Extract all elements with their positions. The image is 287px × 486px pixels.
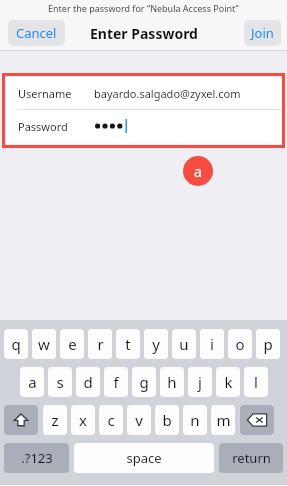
- staticText: return: [232, 449, 271, 467]
- staticText: z: [51, 410, 59, 430]
- button[interactable]: v: [127, 405, 151, 435]
- button[interactable]: u: [172, 329, 196, 359]
- staticText: p: [263, 334, 273, 354]
- button[interactable]: y: [144, 329, 168, 359]
- button[interactable]: o: [228, 329, 252, 359]
- staticText: Enter Password: [90, 24, 198, 43]
- staticText: y: [152, 334, 160, 354]
- button[interactable]: a: [20, 367, 44, 397]
- staticText: .?123: [21, 449, 53, 467]
- button[interactable]: k: [216, 367, 240, 397]
- staticText: Username: [18, 86, 94, 101]
- staticText: x: [79, 410, 87, 430]
- button[interactable]: .?123: [4, 443, 69, 473]
- button[interactable]: g: [132, 367, 156, 397]
- staticText: Join: [251, 24, 274, 42]
- staticText: m: [216, 410, 231, 430]
- staticText: v: [135, 410, 143, 430]
- staticText: a: [194, 162, 202, 181]
- staticText: q: [11, 334, 21, 354]
- staticText: e: [68, 334, 77, 354]
- staticText: i: [210, 334, 214, 354]
- staticText: bayardo.salgado@zyxel.com: [94, 86, 241, 101]
- staticText: u: [179, 334, 189, 354]
- button[interactable]: return: [219, 443, 283, 473]
- staticText: r: [97, 334, 104, 354]
- staticText: space: [126, 449, 162, 467]
- staticText: n: [190, 410, 200, 430]
- button[interactable]: e: [60, 329, 84, 359]
- button[interactable]: c: [99, 405, 123, 435]
- staticText: w: [38, 334, 50, 354]
- button[interactable]: x: [71, 405, 95, 435]
- button[interactable]: i: [200, 329, 224, 359]
- staticText: c: [107, 410, 115, 430]
- button[interactable]: Password: [6, 110, 281, 142]
- button[interactable]: l: [244, 367, 268, 397]
- button[interactable]: h: [160, 367, 184, 397]
- button[interactable]: z: [43, 405, 67, 435]
- staticText: j: [198, 372, 202, 392]
- button[interactable]: Shift: [4, 405, 38, 435]
- staticText: l: [254, 372, 258, 392]
- staticText: h: [167, 372, 177, 392]
- staticText: b: [162, 410, 172, 430]
- button[interactable]: d: [76, 367, 100, 397]
- staticText: a: [28, 372, 37, 392]
- button[interactable]: q: [4, 329, 28, 359]
- button[interactable]: Username: [6, 77, 281, 109]
- button[interactable]: j: [188, 367, 212, 397]
- staticText: g: [139, 372, 149, 392]
- button[interactable]: Join: [244, 20, 281, 46]
- staticText: Password: [18, 119, 94, 134]
- staticText: d: [83, 372, 93, 392]
- button[interactable]: Backspace: [240, 405, 274, 435]
- staticText: o: [235, 334, 245, 354]
- staticText: Enter the password for “Nebula Access Po…: [48, 2, 239, 14]
- staticText: k: [224, 372, 233, 392]
- button[interactable]: n: [183, 405, 207, 435]
- button[interactable]: p: [256, 329, 280, 359]
- staticText: t: [125, 334, 131, 354]
- button[interactable]: t: [116, 329, 140, 359]
- button[interactable]: s: [48, 367, 72, 397]
- button[interactable]: m: [211, 405, 235, 435]
- button[interactable]: w: [32, 329, 56, 359]
- button[interactable]: b: [155, 405, 179, 435]
- button[interactable]: Cancel: [8, 20, 65, 46]
- button[interactable]: space: [74, 443, 214, 473]
- staticText: Cancel: [16, 24, 57, 42]
- staticText: f: [113, 372, 119, 392]
- button[interactable]: f: [104, 367, 128, 397]
- button[interactable]: r: [88, 329, 112, 359]
- staticText: s: [56, 372, 64, 392]
